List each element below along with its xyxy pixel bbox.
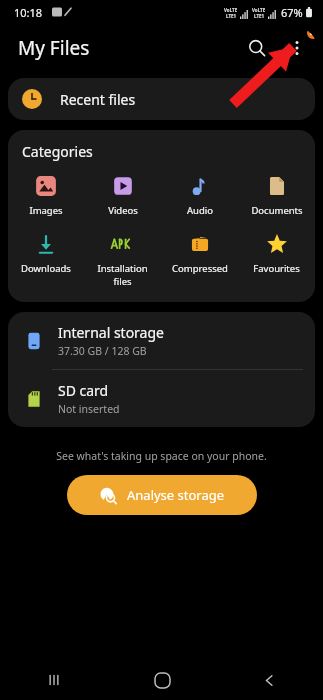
staticText: Audio: [187, 204, 213, 217]
staticText: files: [113, 275, 132, 288]
button[interactable]: Videos: [84, 169, 161, 221]
staticText: VoLTE: [224, 7, 238, 13]
staticText: Analyse storage: [127, 486, 225, 504]
button[interactable]: Documents: [238, 169, 315, 221]
staticText: Videos: [108, 204, 138, 217]
button[interactable]: Compressed: [161, 227, 238, 279]
button[interactable]: More options: [277, 28, 317, 68]
staticText: Compressed: [172, 262, 228, 275]
button[interactable]: Back: [245, 660, 293, 700]
button[interactable]: Home: [138, 660, 186, 700]
staticText: 10:18: [14, 5, 43, 20]
button[interactable]: Downloads: [8, 227, 84, 279]
staticText: SD card: [58, 381, 109, 400]
staticText: LTE1: [226, 13, 237, 19]
staticText: Not inserted: [58, 402, 120, 416]
staticText: Installation: [97, 262, 148, 275]
button[interactable]: Analyse storage: [67, 475, 257, 515]
button[interactable]: Internal storage: [8, 312, 315, 369]
button[interactable]: Search: [237, 28, 277, 68]
staticText: Favourites: [253, 262, 300, 275]
staticText: Documents: [251, 204, 303, 217]
staticText: 67%: [281, 5, 303, 20]
staticText: N: [310, 28, 316, 38]
button[interactable]: Favourites: [238, 227, 315, 279]
button[interactable]: Recent files: [8, 78, 315, 120]
staticText: LTE1: [254, 13, 265, 19]
staticText: My Files: [18, 35, 90, 61]
staticText: Categories: [22, 142, 93, 161]
staticText: 37.30 GB / 128 GB: [58, 344, 147, 358]
button[interactable]: Audio: [161, 169, 238, 221]
button[interactable]: Installation: [84, 227, 161, 292]
button[interactable]: SD card: [8, 370, 315, 427]
button[interactable]: Recents: [30, 660, 78, 700]
staticText: Internal storage: [58, 323, 164, 342]
staticText: See what's taking up space on your phone…: [0, 449, 323, 463]
staticText: Downloads: [21, 262, 71, 275]
staticText: Recent files: [60, 90, 136, 109]
staticText: VoLTE: [252, 7, 266, 13]
button[interactable]: Images: [8, 169, 84, 221]
staticText: Images: [29, 204, 63, 217]
